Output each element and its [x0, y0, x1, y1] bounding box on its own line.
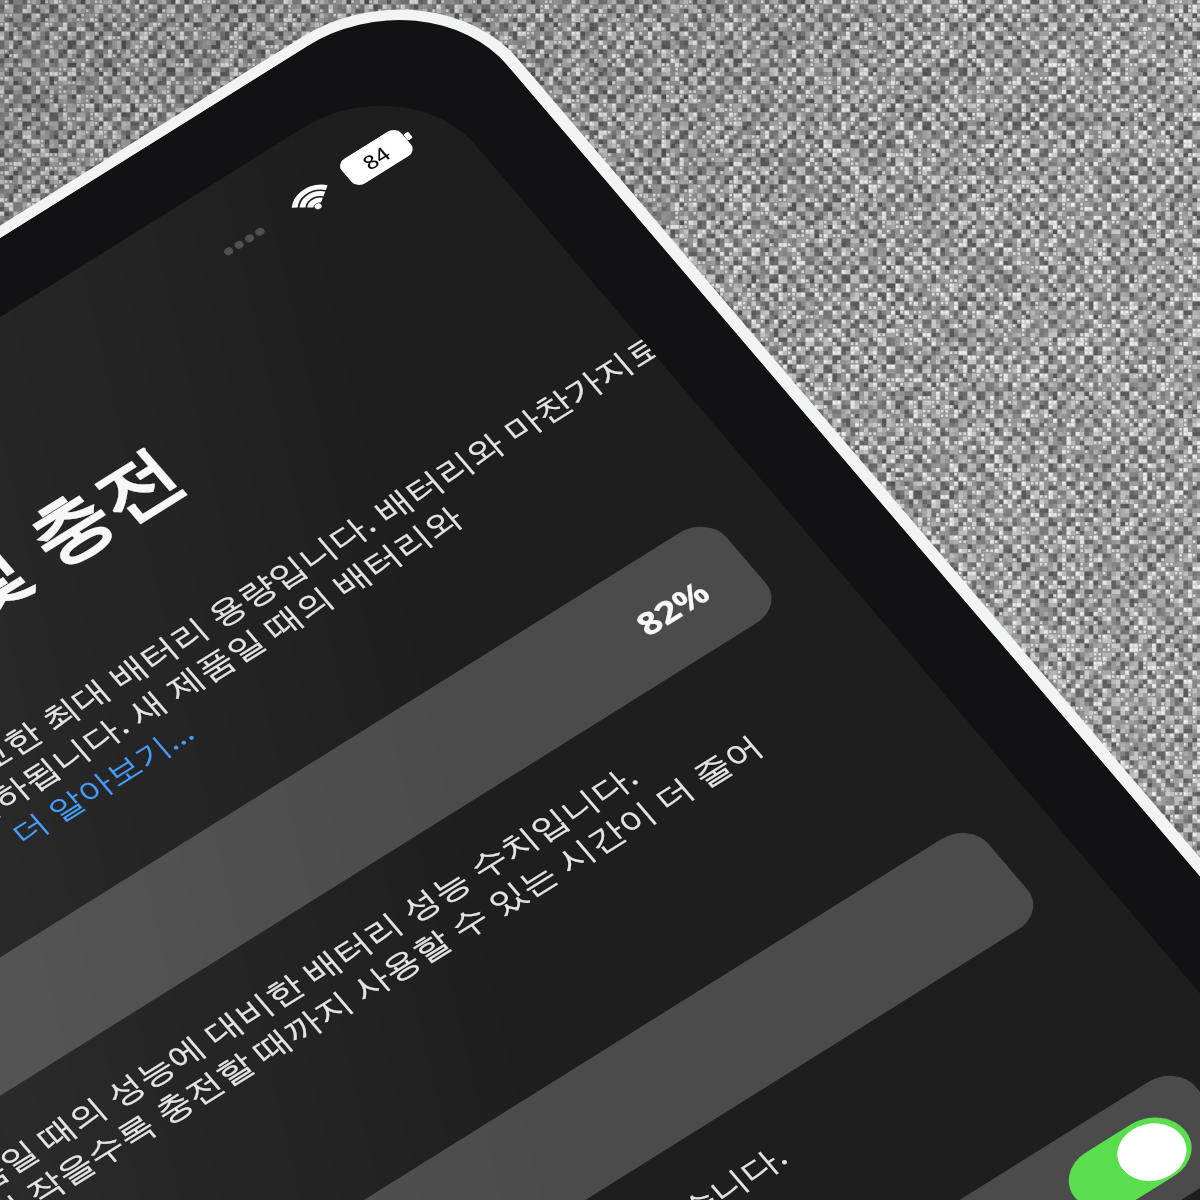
staticText: 82%: [620, 566, 724, 648]
staticText: 이 값은 새 배터리와 비교한 최대 배터리 용량입니다. 배터리와 마찬가지로…: [0, 326, 742, 977]
staticText: 배터리 성능이 정상적으로 유지되고 있습니다.: [104, 1131, 848, 1200]
staticText: 최대 용량: [0, 1014, 15, 1129]
staticText: 비교한 수치입니다.: [0, 836, 19, 1039]
staticText: 용량이 작을수록 충전할 때까지 사용할 수 있는 시간이 더 줄어: [0, 722, 840, 1200]
staticText: 지남에 따라 성능이 저하됩니다. 새 제품일 때의 배터리와: [0, 492, 535, 1008]
button[interactable]: 최대 용량: [0, 503, 861, 1192]
button[interactable]: 충전 최적화: [181, 1053, 1200, 1200]
staticText: 새 제품일 때의 성능에 대비한 배터리 성능 수치입니다.: [0, 751, 709, 1200]
button[interactable]: Optimized battery charging toggle: [1044, 1098, 1200, 1200]
staticText: 84: [354, 137, 399, 178]
staticText: 배터리 상태 및 충전: [0, 416, 252, 882]
button[interactable]: 더 알아보기...: [0, 708, 217, 855]
button[interactable]: 최대 성능 기능: [0, 810, 1122, 1200]
